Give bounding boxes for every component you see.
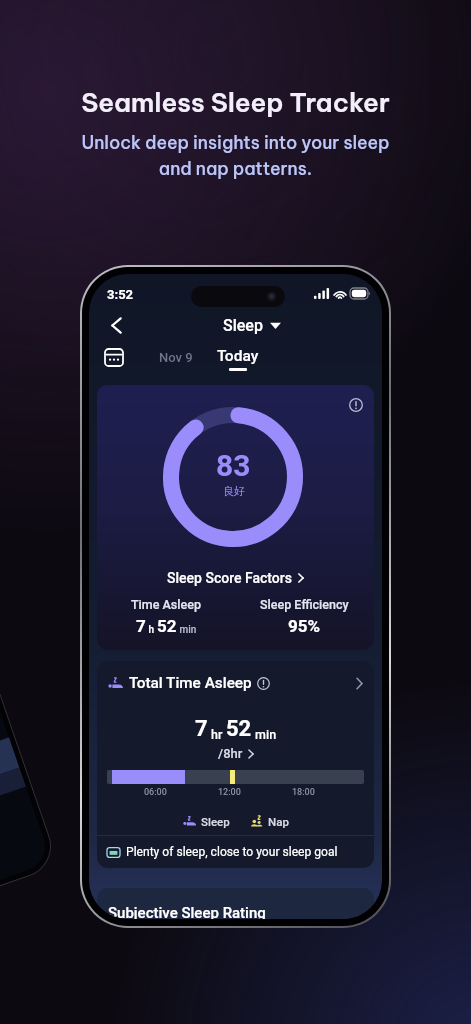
- button[interactable]: Sleep Score Factors: [97, 567, 374, 589]
- staticText: Today: [217, 347, 259, 365]
- staticText: Seamless Sleep Tracker: [81, 86, 390, 119]
- staticText: Time Asleep: [131, 597, 201, 612]
- staticText: Nap: [268, 815, 289, 828]
- staticText: 3:52: [107, 287, 134, 302]
- button[interactable]: Subjective Sleep Rating: [97, 888, 374, 919]
- staticText: Sleep Efficiency: [260, 597, 349, 612]
- staticText: Sleep: [223, 316, 263, 335]
- staticText: 7: [136, 616, 146, 636]
- button[interactable]: Nov 9: [159, 350, 193, 365]
- staticText: /8hr: [218, 746, 243, 761]
- button[interactable]: Today: [217, 347, 259, 371]
- button[interactable]: /8hr: [97, 746, 374, 761]
- button[interactable]: Calendar: [105, 349, 123, 366]
- staticText: 52: [157, 616, 177, 636]
- staticText: Sleep Score Factors: [167, 570, 292, 586]
- button[interactable]: Info: [97, 385, 374, 650]
- button[interactable]: Sleep: [223, 316, 281, 335]
- staticText: 12:00: [218, 787, 241, 798]
- staticText: 06:00: [144, 787, 167, 798]
- button[interactable]: Back: [100, 310, 132, 340]
- button[interactable]: Info: [346, 395, 366, 415]
- staticText: min: [252, 727, 277, 742]
- staticText: 良好: [223, 484, 245, 498]
- staticText: h: [146, 624, 157, 636]
- staticText: 83: [216, 448, 251, 483]
- staticText: Subjective Sleep Rating: [108, 904, 266, 919]
- staticText: 7: [195, 716, 208, 742]
- staticText: Total Time Asleep: [129, 674, 252, 692]
- staticText: Plenty of sleep, close to your sleep goa…: [126, 845, 338, 859]
- staticText: Unlock deep insights into your sleep and…: [81, 131, 390, 180]
- staticText: 95%: [288, 616, 321, 636]
- staticText: Sleep: [201, 815, 230, 828]
- staticText: min: [177, 624, 197, 636]
- button[interactable]: Total Time Asleep: [97, 661, 374, 868]
- staticText: 52: [226, 716, 252, 742]
- staticText: hr: [208, 727, 226, 742]
- staticText: 18:00: [292, 787, 315, 798]
